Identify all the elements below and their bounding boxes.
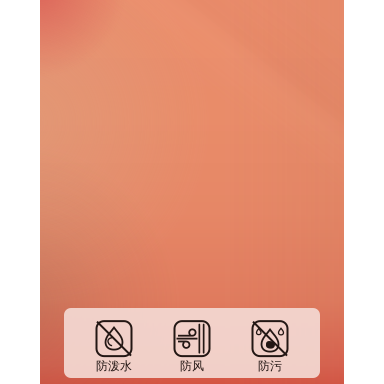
button[interactable]: 防泼水 <box>75 312 153 374</box>
button[interactable]: 防污 <box>231 312 309 374</box>
staticText: 防污 <box>258 359 282 373</box>
staticText: 防风 <box>180 359 204 373</box>
staticText: 防泼水 <box>96 359 132 373</box>
button[interactable]: 防风 <box>153 312 231 374</box>
